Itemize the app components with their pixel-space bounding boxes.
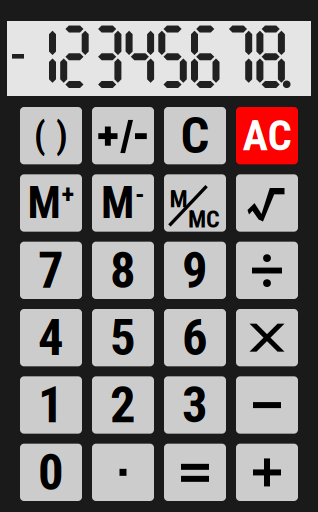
button[interactable]: 3 [164, 376, 226, 434]
staticText: C [180, 106, 209, 165]
button[interactable]: 7 [20, 242, 82, 299]
button[interactable]: Memory subtract [92, 174, 154, 232]
staticText: AC [242, 111, 291, 161]
button[interactable]: 1 [20, 376, 82, 434]
button[interactable]: 0 [20, 444, 82, 501]
staticText: 8 [110, 241, 136, 300]
button[interactable]: 6 [164, 309, 226, 366]
staticText: ) [56, 115, 68, 157]
button[interactable]: Divide [236, 242, 298, 299]
button[interactable]: Multiply [236, 309, 298, 366]
button[interactable]: Subtract [236, 376, 298, 434]
staticText: 9 [182, 241, 208, 300]
staticText: 0 [38, 443, 64, 502]
staticText: 5 [110, 308, 136, 367]
button[interactable]: 8 [92, 242, 154, 299]
button[interactable]: 2 [92, 376, 154, 434]
button[interactable]: Square root [236, 174, 298, 232]
staticText: - [135, 178, 145, 209]
button[interactable]: Clear [164, 107, 226, 164]
staticText: M [170, 185, 188, 213]
button[interactable]: Plus minus [92, 107, 154, 164]
staticText: 1 [38, 375, 64, 435]
button[interactable]: Parentheses [20, 107, 82, 164]
staticText: 3 [182, 375, 208, 435]
staticText: M [27, 177, 60, 229]
button[interactable]: 9 [164, 242, 226, 299]
button[interactable]: 5 [92, 309, 154, 366]
button[interactable]: 4 [20, 309, 82, 366]
staticText: 7 [38, 241, 64, 300]
button[interactable]: Memory recall or clear [164, 174, 226, 232]
staticText: 6 [182, 308, 208, 367]
button[interactable]: All clear [236, 107, 298, 164]
staticText: ( [34, 115, 46, 157]
button[interactable]: Memory add [20, 174, 82, 232]
staticText: + [61, 178, 74, 209]
button[interactable]: Equals [164, 444, 226, 501]
staticText: M [101, 177, 134, 229]
staticText: 4 [38, 308, 64, 367]
staticText: 2 [110, 375, 136, 435]
staticText: MC [188, 205, 220, 233]
button[interactable]: Add [236, 444, 298, 501]
button[interactable]: Decimal point [92, 444, 154, 501]
